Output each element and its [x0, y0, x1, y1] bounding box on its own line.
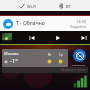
button[interactable]: Album art	[2, 33, 12, 43]
staticText: -1°	[10, 57, 18, 65]
staticText: Wi-Fi	[27, 4, 37, 9]
button[interactable]: Signal strength	[73, 75, 87, 88]
button[interactable]: Ср	[55, 53, 66, 64]
staticText: BT	[66, 4, 71, 9]
staticText: Не все доступно	[61, 68, 85, 72]
button[interactable]: Offline mode	[70, 49, 88, 66]
staticText: Подробнее	[70, 25, 87, 29]
staticText: Ср	[59, 53, 63, 57]
button[interactable]: Не все доступно	[2, 67, 88, 73]
button[interactable]: Москва	[2, 49, 68, 67]
button[interactable]: Previous	[27, 33, 36, 42]
staticText: 13:50	[76, 19, 87, 24]
staticText: Отключить	[72, 63, 86, 66]
button[interactable]: Next	[79, 33, 88, 42]
staticText: Вт	[48, 53, 52, 57]
button[interactable]: Play	[53, 33, 62, 42]
button[interactable]: T - Облачно	[0, 16, 90, 31]
button[interactable]: Вт	[44, 53, 55, 64]
staticText: Москва	[4, 51, 19, 56]
button[interactable]: Bluetooth	[56, 2, 73, 10]
button[interactable]: Wi-Fi	[17, 2, 39, 10]
staticText: T - Облачно	[16, 20, 45, 27]
